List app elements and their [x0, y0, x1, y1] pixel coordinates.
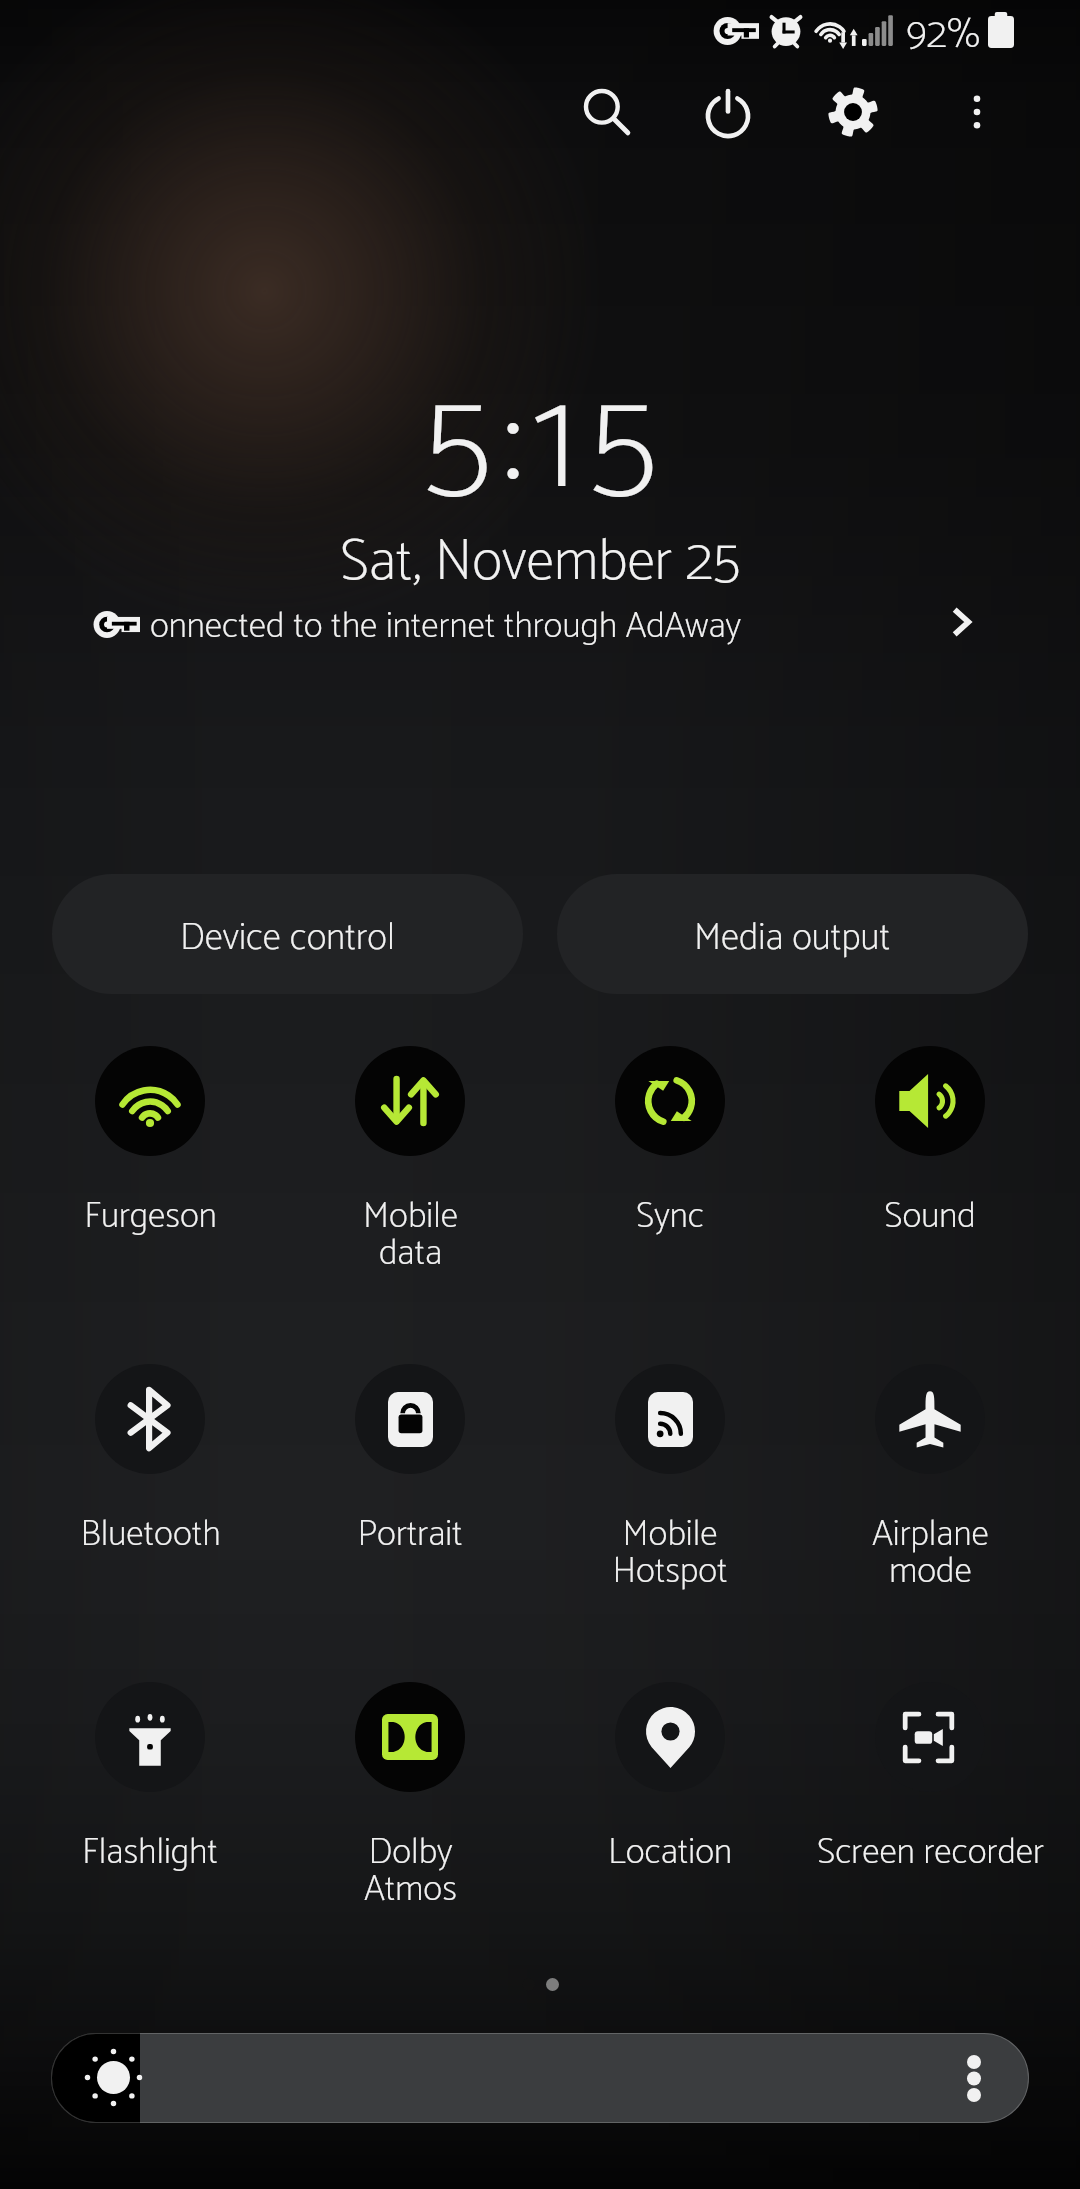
button[interactable]: Page 2: [546, 1978, 559, 1991]
button[interactable]: Dolby Atmos: [270, 1682, 550, 1872]
staticText: onnected to the internet through AdAway: [150, 597, 741, 653]
button[interactable]: Airplane mode: [790, 1364, 1070, 1554]
button[interactable]: Sync: [530, 1046, 810, 1236]
button[interactable]: Power off: [686, 71, 770, 155]
button[interactable]: Mobile hotspot: [530, 1364, 810, 1554]
button[interactable]: Screen recorder: [790, 1682, 1070, 1872]
button[interactable]: Wi-Fi: [10, 1046, 290, 1236]
staticText: Sync: [636, 1187, 704, 1246]
button[interactable]: Search: [564, 70, 648, 154]
button[interactable]: Flashlight: [10, 1682, 290, 1872]
staticText: Dolby Atmos: [364, 1823, 457, 1920]
button[interactable]: Media output: [557, 874, 1028, 994]
staticText: Airplane mode: [872, 1505, 989, 1602]
staticText: 92%: [906, 1, 981, 70]
button[interactable]: Brightness: [51, 2033, 1029, 2123]
staticText: Mobile Hotspot: [612, 1505, 728, 1602]
button[interactable]: Location: [530, 1682, 810, 1872]
staticText: Sound: [884, 1187, 976, 1246]
staticText: Device control: [180, 908, 395, 970]
button[interactable]: Settings: [811, 70, 895, 154]
staticText: 5:15: [422, 329, 669, 564]
staticText: Mobile data: [363, 1187, 458, 1284]
staticText: Bluetooth: [80, 1505, 221, 1564]
button[interactable]: Sound: [790, 1046, 1070, 1236]
staticText: Screen recorder: [817, 1823, 1044, 1882]
button[interactable]: Auto rotate: [270, 1364, 550, 1554]
staticText: Media output: [694, 908, 891, 970]
staticText: Location: [608, 1823, 732, 1882]
staticText: Flashlight: [82, 1823, 218, 1882]
button[interactable]: Device control: [52, 874, 523, 994]
staticText: Sat, November 25: [340, 516, 741, 609]
staticText: Furgeson: [84, 1187, 217, 1246]
button[interactable]: Bluetooth: [10, 1364, 290, 1554]
staticText: Portrait: [357, 1505, 463, 1564]
button[interactable]: VPN connected through AdAway: [0, 597, 1080, 653]
button[interactable]: Mobile data: [270, 1046, 550, 1236]
button[interactable]: More options: [935, 70, 1019, 154]
